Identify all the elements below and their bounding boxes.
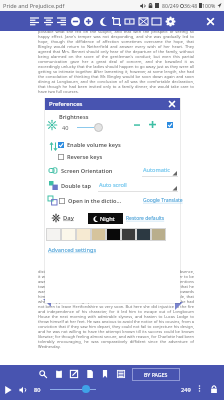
- button[interactable]: Settings: [163, 14, 177, 28]
- button[interactable]: Speech rate: [82, 385, 90, 393]
- button[interactable]: Day: [63, 214, 74, 222]
- button[interactable]: Zoom in: [81, 14, 95, 28]
- button[interactable]: Play: [2, 384, 13, 395]
- staticText: Brightness: [59, 113, 89, 121]
- button[interactable]: Fit page: [149, 14, 163, 28]
- button[interactable]: Theme colour: [61, 228, 76, 241]
- button[interactable]: Open in the dictio...: [59, 196, 122, 205]
- staticText: Night: [100, 215, 115, 223]
- button[interactable]: Search: [36, 367, 49, 380]
- staticText: possible what she felt on the subject, a…: [38, 29, 194, 94]
- button[interactable]: Rotate: [109, 14, 123, 28]
- staticText: Screen Orientation: [61, 167, 113, 175]
- staticText: BY PAGES: [144, 371, 168, 378]
- button[interactable]: Increase brightness: [147, 119, 158, 130]
- staticText: 40: [62, 124, 69, 132]
- staticText: Open in the dictio...: [68, 197, 122, 205]
- button[interactable]: Theme colour: [121, 228, 136, 241]
- button[interactable]: More options: [195, 384, 204, 393]
- button[interactable]: Restore defaults: [126, 215, 165, 222]
- button[interactable]: Decrease brightness: [131, 119, 142, 130]
- staticText: 249: [181, 386, 191, 394]
- staticText: distinction of rank preserved. Sir Willi…: [38, 269, 194, 349]
- staticText: Advanced settings: [48, 246, 97, 254]
- button[interactable]: Advanced settings: [48, 246, 97, 254]
- staticText: Preferences: [49, 100, 83, 108]
- staticText: 36:48: [184, 2, 198, 9]
- button[interactable]: Align left: [27, 14, 41, 28]
- button[interactable]: Theme colour: [76, 228, 91, 241]
- button[interactable]: Contents: [114, 367, 127, 380]
- button[interactable]: Bookmark: [98, 367, 111, 380]
- button[interactable]: Crop margins: [122, 14, 136, 28]
- button[interactable]: Two columns: [136, 14, 150, 28]
- button[interactable]: Close toolbar: [203, 14, 217, 28]
- staticText: Reverse keys: [67, 153, 103, 161]
- button[interactable]: Theme colour: [91, 228, 106, 241]
- staticText: Double tap: [61, 182, 91, 190]
- button[interactable]: Close preferences: [167, 99, 177, 109]
- button[interactable]: Align justify: [41, 14, 55, 28]
- staticText: Automatic: [143, 166, 170, 174]
- button[interactable]: Preferences: [45, 98, 180, 110]
- button[interactable]: Text to speech volume: [17, 384, 28, 395]
- button[interactable]: Theme colour: [46, 228, 61, 241]
- staticText: Auto scroll: [99, 181, 127, 189]
- button[interactable]: Align right: [54, 14, 68, 28]
- button[interactable]: Night mode: [95, 14, 109, 28]
- staticText: Google Translate: [143, 197, 183, 204]
- staticText: Restore defaults: [126, 215, 165, 222]
- button[interactable]: Theme colour: [106, 228, 121, 241]
- staticText: Enable volume keys: [67, 141, 121, 149]
- staticText: 100%: [202, 2, 216, 9]
- button[interactable]: Automatic: [142, 164, 178, 177]
- button[interactable]: Theme colour: [136, 228, 151, 241]
- button[interactable]: Brightness slider: [94, 123, 103, 132]
- button[interactable]: Auto brightness: [164, 119, 175, 130]
- button[interactable]: Google Translate: [143, 197, 183, 204]
- staticText: Pride and Prejudice.pdf: [3, 2, 65, 10]
- button[interactable]: Annotate: [67, 367, 80, 380]
- staticText: 80: [34, 386, 41, 394]
- button[interactable]: Copy page: [52, 367, 65, 380]
- button[interactable]: Zoom out: [68, 14, 82, 28]
- staticText: Day: [63, 214, 74, 222]
- button[interactable]: Lock rotation: [209, 384, 219, 394]
- button[interactable]: Night: [88, 213, 123, 224]
- button[interactable]: BY PAGES: [132, 368, 180, 381]
- button[interactable]: Theme colour: [151, 228, 166, 241]
- staticText: 80/249: [162, 2, 179, 9]
- button[interactable]: Enable volume keys: [58, 140, 121, 149]
- button[interactable]: Auto scroll: [98, 179, 178, 192]
- button[interactable]: Reverse keys: [58, 152, 103, 161]
- button[interactable]: New note: [83, 367, 96, 380]
